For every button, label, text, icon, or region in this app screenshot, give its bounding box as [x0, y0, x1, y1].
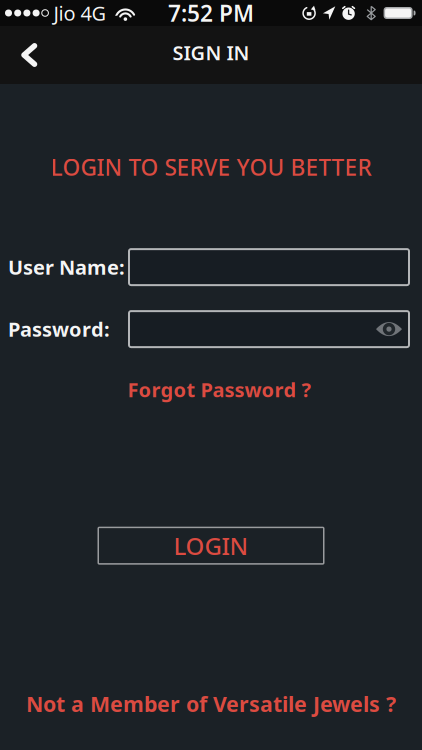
button[interactable]: Forgot Password ?	[127, 376, 311, 403]
staticText: Password:	[8, 316, 110, 342]
button[interactable]: LOGIN	[97, 527, 324, 565]
button[interactable]: Not a Member of Versatile Jewels ?	[26, 690, 396, 718]
staticText: Not a Member of Versatile Jewels ?	[26, 690, 396, 718]
button[interactable]: Show password	[376, 323, 410, 336]
staticText: LOGIN TO SERVE YOU BETTER	[50, 152, 371, 182]
staticText: LOGIN	[173, 530, 248, 562]
staticText: 7:52 PM	[168, 0, 254, 28]
staticText: Jio 4G	[53, 0, 106, 26]
staticText: Forgot Password ?	[127, 376, 311, 403]
staticText: SIGN IN	[172, 39, 249, 66]
staticText: User Name:	[8, 254, 125, 280]
button[interactable]: Back	[0, 26, 38, 84]
